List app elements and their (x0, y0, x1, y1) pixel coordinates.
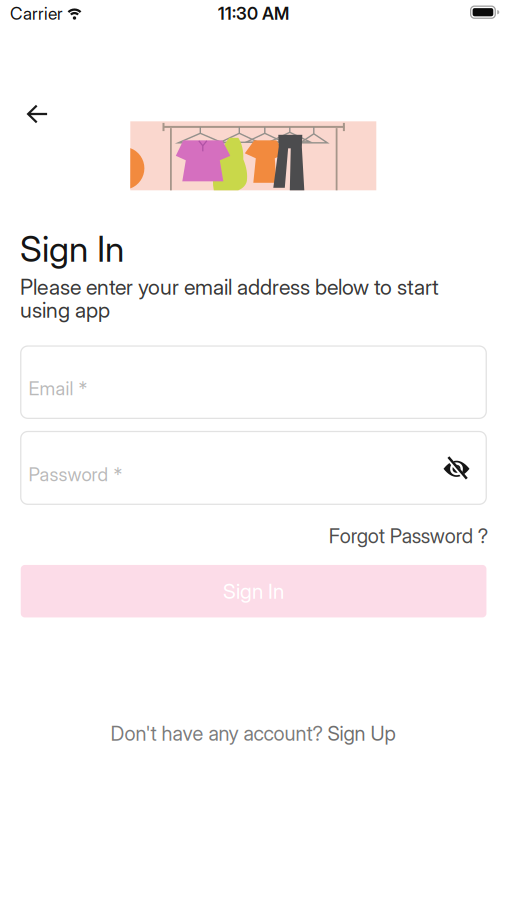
staticText: Sign In (223, 579, 284, 604)
staticText: Password * (29, 463, 123, 486)
button[interactable]: Password (21, 431, 486, 504)
staticText: Forgot Password ? (329, 524, 488, 548)
button[interactable]: Forgot Password ? (329, 524, 488, 548)
button[interactable]: Back (15, 92, 59, 136)
staticText: Sign In (20, 228, 124, 270)
staticText: 11:30 AM (218, 3, 289, 24)
button[interactable]: Email (21, 346, 486, 418)
button[interactable]: Sign In (21, 565, 486, 617)
staticText: Sign Up (327, 721, 395, 746)
staticText: Carrier (10, 3, 63, 24)
staticText: Please enter your email address below to… (20, 274, 439, 323)
button[interactable]: Sign Up (327, 721, 395, 746)
staticText: Email * (29, 377, 88, 400)
staticText: Don't have any account? (110, 721, 322, 746)
button[interactable]: Show password (441, 456, 471, 482)
